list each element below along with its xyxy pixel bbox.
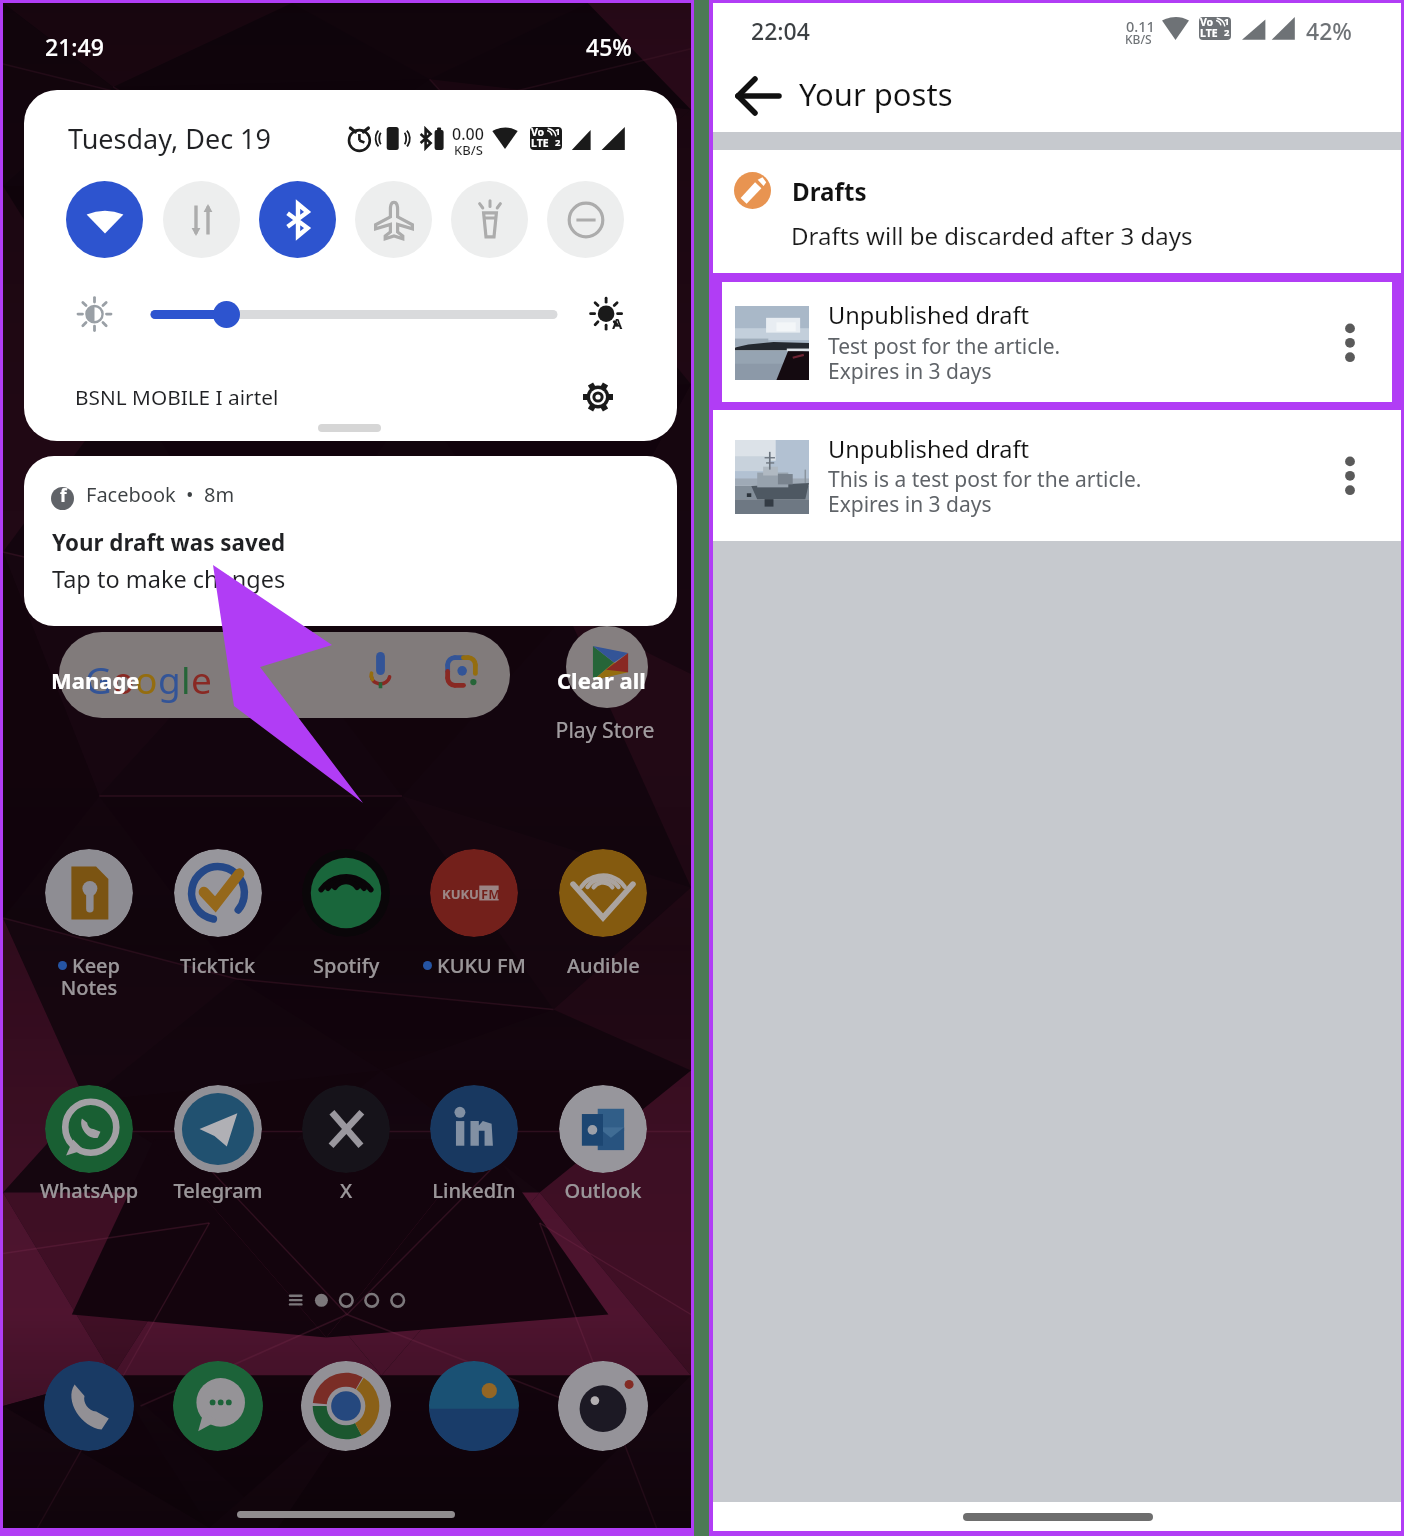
staticText: LTE bbox=[531, 136, 549, 150]
button[interactable]: Settings bbox=[573, 372, 623, 422]
staticText: Audible bbox=[567, 952, 640, 979]
button[interactable]: Spotify bbox=[302, 849, 390, 937]
staticText: KB/S bbox=[1125, 31, 1152, 47]
button[interactable]: Audible bbox=[559, 849, 647, 937]
staticText: KB/S bbox=[454, 141, 483, 159]
staticText: 1 bbox=[555, 127, 561, 138]
button[interactable]: Airplane mode bbox=[355, 181, 432, 258]
staticText: 22:04 bbox=[751, 15, 810, 46]
button[interactable]: More options bbox=[1320, 447, 1380, 507]
staticText: G bbox=[85, 654, 112, 704]
button[interactable]: Do not disturb bbox=[547, 181, 624, 258]
staticText: TickTick bbox=[180, 952, 256, 979]
button[interactable]: Drafts bbox=[713, 150, 1401, 273]
button[interactable]: Play Store bbox=[566, 626, 648, 708]
staticText: l bbox=[181, 654, 191, 704]
button[interactable]: Telegram bbox=[174, 1085, 262, 1173]
button[interactable]: More options bbox=[1320, 314, 1380, 374]
staticText: Tap to make changes bbox=[52, 563, 286, 595]
button[interactable]: f bbox=[24, 456, 677, 626]
button[interactable]: Unpublished draft bbox=[722, 282, 1392, 402]
staticText: 0.00 bbox=[452, 123, 484, 145]
button[interactable]: Wi-Fi bbox=[66, 181, 143, 258]
staticText: Keep bbox=[72, 952, 120, 979]
staticText: Spotify bbox=[313, 952, 380, 979]
staticText: 2 bbox=[1224, 26, 1230, 39]
staticText: 0.11 bbox=[1126, 16, 1155, 36]
staticText: Vo bbox=[1200, 17, 1214, 29]
staticText: Expires in 3 days bbox=[828, 357, 992, 386]
staticText: 2 bbox=[555, 136, 561, 149]
button[interactable]: Phone bbox=[44, 1361, 134, 1451]
staticText: 21:49 bbox=[45, 31, 104, 62]
staticText: Notes bbox=[19, 974, 159, 1001]
button[interactable]: Search bbox=[59, 632, 510, 718]
button[interactable]: Back bbox=[731, 65, 793, 127]
staticText: f bbox=[60, 487, 67, 507]
button[interactable]: Flashlight bbox=[451, 181, 528, 258]
staticText: A bbox=[612, 313, 623, 333]
button[interactable]: Messages bbox=[173, 1361, 263, 1451]
staticText: e bbox=[191, 654, 212, 704]
button[interactable]: Mobile data bbox=[163, 181, 240, 258]
button[interactable]: Chrome bbox=[301, 1361, 391, 1451]
staticText: This is a test post for the article. bbox=[828, 465, 1142, 494]
staticText: Play Store bbox=[545, 715, 665, 744]
staticText: Facebook • 8m bbox=[86, 481, 235, 508]
staticText: 45% bbox=[586, 31, 632, 62]
staticText: 42% bbox=[1306, 15, 1352, 46]
staticText: Test post for the article. bbox=[828, 332, 1061, 361]
staticText: BSNL MOBILE I airtel bbox=[75, 383, 279, 411]
staticText: Clear all bbox=[557, 665, 646, 695]
staticText: Expires in 3 days bbox=[828, 490, 992, 519]
staticText: Manage bbox=[51, 665, 140, 695]
button[interactable]: X bbox=[302, 1085, 390, 1173]
staticText: Outlook bbox=[533, 1177, 673, 1204]
staticText: o bbox=[112, 654, 135, 704]
button[interactable]: Keep bbox=[45, 849, 133, 937]
button[interactable]: Bluetooth bbox=[259, 181, 336, 258]
staticText: X bbox=[276, 1177, 416, 1204]
staticText: Your draft was saved bbox=[52, 527, 286, 558]
button[interactable]: Manage bbox=[36, 658, 156, 714]
button[interactable]: Unpublished draft bbox=[713, 410, 1401, 541]
staticText: g bbox=[158, 654, 181, 704]
staticText: FM bbox=[481, 885, 501, 903]
staticText: Tuesday, Dec 19 bbox=[68, 120, 272, 157]
staticText: KUKU FM bbox=[437, 952, 526, 979]
button[interactable]: Gallery bbox=[429, 1361, 519, 1451]
button[interactable]: Camera bbox=[558, 1361, 648, 1451]
staticText: 1 bbox=[1224, 17, 1230, 28]
button[interactable]: Outlook bbox=[559, 1085, 647, 1173]
staticText: Drafts will be discarded after 3 days bbox=[791, 219, 1193, 252]
staticText: Telegram bbox=[148, 1177, 288, 1204]
staticText: o bbox=[135, 654, 158, 704]
button[interactable]: LinkedIn bbox=[430, 1085, 518, 1173]
staticText: Unpublished draft bbox=[828, 433, 1030, 465]
button[interactable]: KUKU FM bbox=[430, 849, 518, 937]
staticText: LTE bbox=[1200, 26, 1218, 40]
staticText: WhatsApp bbox=[19, 1177, 159, 1204]
button[interactable]: TickTick bbox=[174, 849, 262, 937]
staticText: Drafts bbox=[792, 175, 867, 208]
button[interactable]: Clear all bbox=[541, 658, 661, 714]
button[interactable]: WhatsApp bbox=[45, 1085, 133, 1173]
staticText: LinkedIn bbox=[404, 1177, 544, 1204]
staticText: Your posts bbox=[799, 73, 953, 115]
staticText: Vo bbox=[531, 127, 545, 139]
staticText: KUKU bbox=[442, 885, 479, 903]
staticText: Unpublished draft bbox=[828, 299, 1030, 331]
